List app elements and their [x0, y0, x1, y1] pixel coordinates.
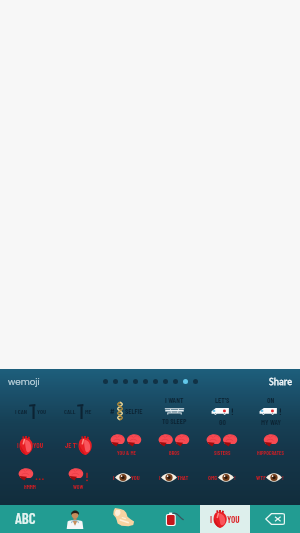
staticText: I — [159, 474, 161, 481]
button[interactable]: I WANT — [150, 394, 198, 428]
staticText: YOU — [37, 408, 46, 416]
staticText: I — [210, 514, 213, 525]
button[interactable]: Share — [269, 376, 300, 388]
other: Hand — [113, 508, 135, 527]
button[interactable]: SISTERS — [198, 428, 246, 462]
button[interactable]: WOW — [54, 462, 102, 496]
staticText: WTF — [256, 474, 266, 481]
button[interactable]: ABC — [0, 505, 50, 533]
staticText: GO — [219, 418, 226, 427]
staticText: ABC — [15, 509, 36, 527]
staticText: ! — [282, 474, 284, 481]
staticText: THAT — [177, 474, 189, 481]
button[interactable]: # — [102, 394, 150, 428]
staticText: ! — [234, 474, 236, 481]
staticText: I — [17, 441, 19, 450]
staticText: YOU — [33, 441, 44, 450]
button[interactable]: Hand — [100, 505, 150, 533]
button[interactable]: WTF — [246, 462, 294, 496]
staticText: BROS — [169, 449, 180, 456]
staticText: I WANT — [165, 396, 184, 405]
button[interactable]: YOU & ME — [102, 428, 150, 462]
other: Backspace — [265, 513, 285, 525]
button[interactable]: OMG — [198, 462, 246, 496]
staticText: SISTERS — [214, 449, 231, 456]
staticText: YOU — [227, 514, 240, 525]
staticText: OMG — [208, 474, 218, 481]
staticText: ON — [267, 396, 275, 405]
staticText: TO SLEEP — [162, 417, 187, 426]
button[interactable]: BROS — [150, 428, 198, 462]
staticText: WOW — [73, 483, 84, 490]
staticText: ME — [85, 408, 92, 416]
button[interactable]: HMMM — [6, 462, 54, 496]
button[interactable]: Backspace — [250, 505, 300, 533]
staticText: wemoji — [8, 376, 40, 388]
button[interactable]: HIPPOCRATES — [246, 428, 294, 462]
button[interactable]: CALL — [54, 394, 102, 428]
staticText: YOU & ME — [117, 449, 136, 456]
button[interactable]: I — [6, 428, 54, 462]
button[interactable]: I — [102, 462, 150, 496]
button[interactable]: I — [150, 462, 198, 496]
other: Doctor — [67, 509, 83, 529]
button[interactable]: I — [200, 505, 250, 533]
other: Blood bag — [163, 511, 185, 527]
staticText: YOU — [131, 474, 140, 481]
button[interactable]: JE T' — [54, 428, 102, 462]
button[interactable]: Doctor — [50, 505, 100, 533]
staticText: MY WAY — [261, 418, 281, 427]
button[interactable]: ON — [246, 394, 294, 428]
staticText: JE T' — [65, 441, 78, 450]
staticText: CALL — [64, 408, 76, 416]
button[interactable]: LET'S — [198, 394, 246, 428]
staticText: I CAN — [15, 408, 28, 416]
staticText: HMMM — [24, 483, 36, 490]
button[interactable]: I CAN — [6, 394, 54, 428]
staticText: I — [113, 474, 115, 481]
button[interactable]: Blood bag — [150, 505, 200, 533]
staticText: LET'S — [215, 396, 230, 405]
staticText: SELFIE — [125, 407, 143, 416]
staticText: # — [110, 407, 115, 416]
staticText: HIPPOCRATES — [257, 449, 284, 456]
